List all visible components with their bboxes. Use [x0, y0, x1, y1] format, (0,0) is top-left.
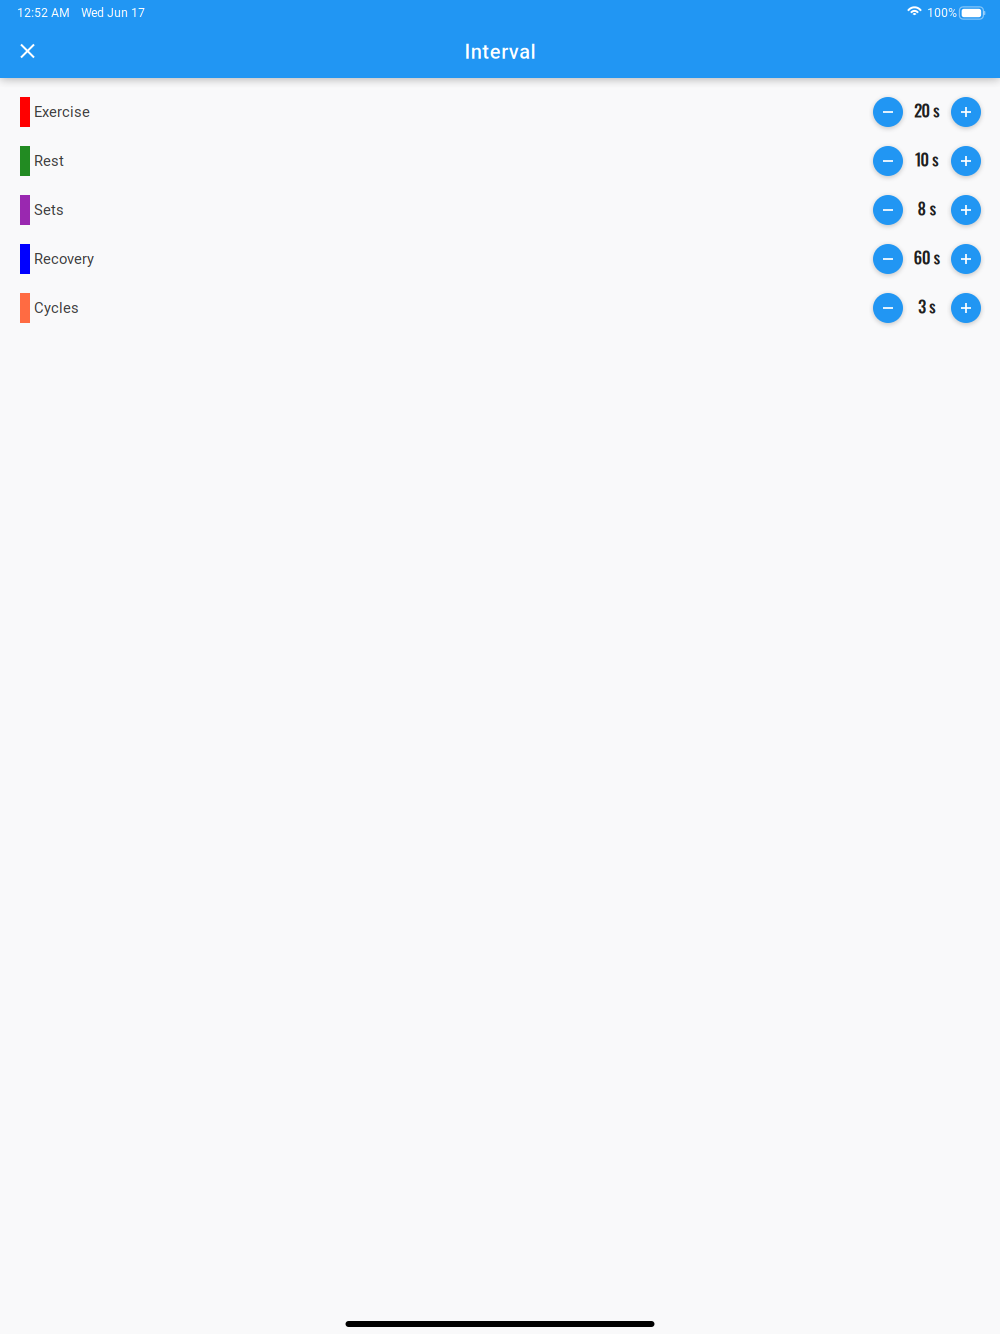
button[interactable]: Increase — [951, 97, 981, 127]
staticText: 20 s — [914, 98, 940, 122]
staticText: Exercise — [34, 103, 90, 121]
button[interactable]: Increase — [951, 195, 981, 225]
staticText: 8 s — [918, 196, 936, 220]
staticText: Cycles — [34, 299, 79, 317]
button[interactable]: Decrease — [873, 195, 903, 225]
button[interactable]: Decrease — [873, 293, 903, 323]
button[interactable]: Increase — [951, 244, 981, 274]
button[interactable]: Decrease — [873, 146, 903, 176]
button[interactable]: Close — [5, 29, 49, 73]
button[interactable]: Decrease — [873, 244, 903, 274]
button[interactable]: Increase — [951, 146, 981, 176]
staticText: Sets — [34, 201, 64, 219]
button[interactable]: Increase — [951, 293, 981, 323]
staticText: Wed Jun 17 — [81, 6, 145, 20]
button[interactable]: Decrease — [873, 97, 903, 127]
staticText: Recovery — [34, 250, 94, 268]
staticText: 12:52 AM — [17, 6, 69, 20]
staticText: Interval — [464, 40, 536, 64]
staticText: 100% — [927, 6, 957, 20]
staticText: Rest — [34, 152, 64, 170]
staticText: 3 s — [918, 294, 936, 318]
staticText: 60 s — [913, 245, 941, 269]
staticText: 10 s — [915, 147, 939, 171]
